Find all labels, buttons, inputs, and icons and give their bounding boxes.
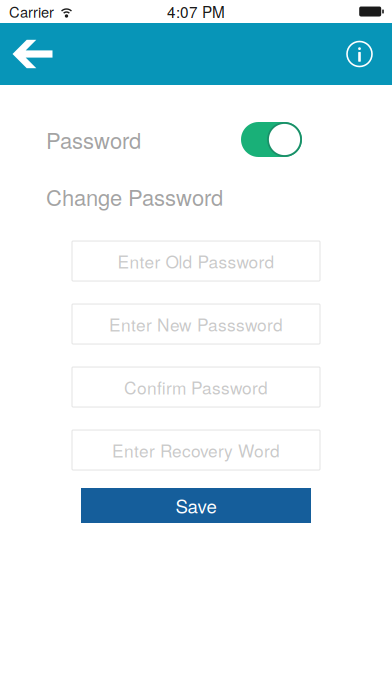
button[interactable]: Information bbox=[330, 23, 392, 85]
button[interactable]: Enter Recovery Word bbox=[72, 430, 320, 470]
staticText: Password bbox=[46, 124, 141, 155]
staticText: Enter Recovery Word bbox=[112, 438, 280, 462]
staticText: Carrier bbox=[9, 1, 54, 22]
staticText: Confirm Password bbox=[124, 375, 268, 399]
button[interactable]: Back bbox=[0, 23, 64, 85]
staticText: Enter New Passsword bbox=[109, 312, 283, 336]
staticText: 4:07 PM bbox=[167, 0, 225, 22]
staticText: Enter Old Password bbox=[117, 249, 274, 273]
button[interactable]: Enter Old Password bbox=[72, 241, 320, 281]
button[interactable]: Enter New Passsword bbox=[72, 304, 320, 344]
button[interactable]: Save bbox=[81, 488, 311, 523]
button[interactable]: Confirm Password bbox=[72, 367, 320, 407]
staticText: Change Password bbox=[46, 181, 223, 212]
staticText: Save bbox=[175, 492, 216, 519]
button[interactable]: Password toggle, on bbox=[241, 122, 302, 157]
